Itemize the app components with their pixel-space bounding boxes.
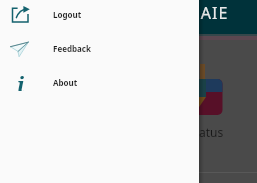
staticText: i	[17, 71, 25, 91]
staticText: About	[53, 77, 78, 88]
button[interactable]: Logout	[0, 1, 199, 28]
staticText: Logout	[53, 9, 82, 20]
button[interactable]: Feedback	[0, 35, 199, 62]
staticText: MY AIE	[170, 2, 229, 24]
staticText: Feedback	[53, 43, 91, 54]
button[interactable]: i	[0, 69, 199, 96]
staticText: Status	[188, 124, 224, 140]
